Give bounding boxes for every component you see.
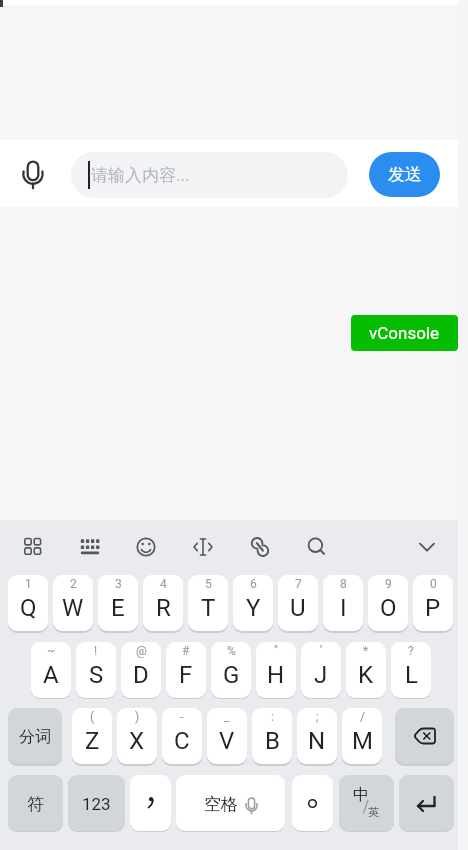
- button[interactable]: 符: [8, 775, 63, 831]
- staticText: /: [360, 710, 365, 724]
- button[interactable]: 中: [339, 775, 394, 831]
- staticText: 2: [70, 577, 77, 591]
- button[interactable]: N: [297, 708, 337, 764]
- button[interactable]: [183, 527, 223, 567]
- button[interactable]: [130, 775, 171, 831]
- staticText: F: [179, 661, 193, 689]
- button[interactable]: H: [256, 642, 296, 698]
- button[interactable]: E: [98, 575, 138, 631]
- button[interactable]: [399, 775, 454, 831]
- staticText: 3: [115, 577, 122, 591]
- button[interactable]: B: [252, 708, 292, 764]
- staticText: ': [320, 644, 323, 658]
- button[interactable]: K: [346, 642, 386, 698]
- staticText: Z: [85, 727, 100, 755]
- staticText: 1: [25, 577, 32, 591]
- staticText: X: [129, 727, 145, 755]
- button[interactable]: 发送: [369, 152, 440, 197]
- staticText: 中: [353, 785, 369, 805]
- button[interactable]: [240, 527, 280, 567]
- button[interactable]: G: [211, 642, 251, 698]
- staticText: 9: [385, 577, 392, 591]
- staticText: U: [290, 594, 306, 622]
- staticText: E: [111, 594, 125, 622]
- staticText: V: [219, 727, 235, 755]
- staticText: -: [180, 710, 184, 724]
- staticText: T: [201, 594, 216, 622]
- staticText: W: [62, 594, 84, 622]
- staticText: 8: [340, 577, 347, 591]
- button[interactable]: Q: [8, 575, 48, 631]
- staticText: Q: [20, 594, 37, 622]
- staticText: 123: [82, 794, 111, 814]
- staticText: 7: [295, 577, 302, 591]
- button[interactable]: M: [342, 708, 382, 764]
- button[interactable]: C: [162, 708, 202, 764]
- staticText: @: [136, 644, 147, 658]
- button[interactable]: [292, 775, 333, 831]
- staticText: 6: [250, 577, 257, 591]
- staticText: #: [182, 644, 190, 658]
- staticText: :: [271, 710, 274, 724]
- button[interactable]: 请输入内容...: [71, 152, 348, 198]
- staticText: C: [174, 727, 190, 755]
- button[interactable]: O: [368, 575, 408, 631]
- staticText: O: [380, 594, 397, 622]
- staticText: 符: [27, 794, 44, 815]
- staticText: 请输入内容...: [91, 165, 190, 186]
- staticText: B: [265, 727, 280, 755]
- button[interactable]: R: [143, 575, 183, 631]
- staticText: 空格: [204, 794, 238, 815]
- staticText: ;: [316, 710, 319, 724]
- button[interactable]: [70, 527, 110, 567]
- staticText: 0: [430, 577, 437, 591]
- button[interactable]: U: [278, 575, 318, 631]
- staticText: *: [363, 644, 369, 658]
- staticText: D: [133, 661, 149, 689]
- button[interactable]: X: [117, 708, 157, 764]
- button[interactable]: A: [31, 642, 71, 698]
- staticText: L: [405, 661, 418, 689]
- button[interactable]: 123: [68, 775, 125, 831]
- staticText: ?: [408, 644, 414, 658]
- staticText: I: [340, 594, 347, 622]
- staticText: ~: [47, 644, 56, 658]
- staticText: Y: [246, 594, 261, 622]
- staticText: R: [156, 594, 171, 622]
- staticText: !: [94, 644, 98, 658]
- button[interactable]: [395, 708, 454, 764]
- button[interactable]: Z: [72, 708, 112, 764]
- staticText: S: [89, 661, 104, 689]
- button[interactable]: [297, 527, 337, 567]
- button[interactable]: [126, 527, 166, 567]
- staticText: M: [352, 727, 373, 755]
- staticText: 4: [160, 577, 167, 591]
- button[interactable]: 空格: [176, 775, 285, 831]
- staticText: J: [314, 661, 328, 689]
- button[interactable]: L: [391, 642, 431, 698]
- button[interactable]: W: [53, 575, 93, 631]
- button[interactable]: [13, 527, 53, 567]
- staticText: vConsole: [369, 323, 440, 343]
- button[interactable]: S: [76, 642, 116, 698]
- button[interactable]: V: [207, 708, 247, 764]
- staticText: P: [425, 594, 441, 622]
- button[interactable]: D: [121, 642, 161, 698]
- staticText: ": [274, 644, 278, 658]
- button[interactable]: P: [413, 575, 453, 631]
- staticText: _: [224, 710, 230, 724]
- staticText: H: [267, 661, 285, 689]
- button[interactable]: T: [188, 575, 228, 631]
- button[interactable]: J: [301, 642, 341, 698]
- staticText: G: [223, 661, 240, 689]
- button[interactable]: Y: [233, 575, 273, 631]
- button[interactable]: [14, 150, 54, 196]
- button[interactable]: [407, 527, 447, 567]
- button[interactable]: vConsole: [351, 315, 458, 351]
- staticText: 发送: [388, 164, 422, 185]
- button[interactable]: F: [166, 642, 206, 698]
- staticText: 5: [205, 577, 212, 591]
- button[interactable]: 分词: [8, 708, 62, 764]
- button[interactable]: I: [323, 575, 363, 631]
- staticText: 分词: [19, 727, 51, 747]
